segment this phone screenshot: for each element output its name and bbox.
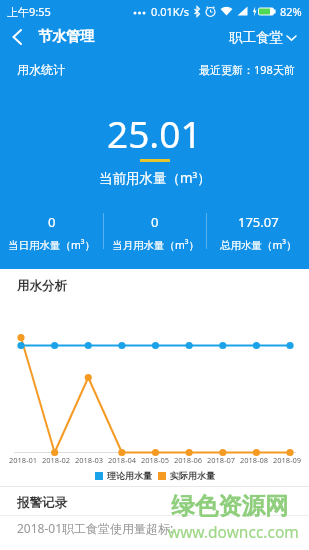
staticText: 报警记录 <box>17 495 67 511</box>
staticText: 0.01K/s <box>151 4 189 19</box>
staticText: 上午9:55 <box>7 4 51 19</box>
staticText: 2018-06 <box>174 455 203 465</box>
staticText: 当月用水量（m³） <box>112 238 199 252</box>
staticText: 2018-09 <box>273 455 302 465</box>
button[interactable] <box>0 22 34 52</box>
staticText: 节水管理 <box>38 28 94 46</box>
staticText: 82% <box>280 4 302 19</box>
staticText: 2018-01 <box>9 455 38 465</box>
staticText: 175.07 <box>238 213 279 231</box>
button[interactable]: 实际用水量 <box>158 470 215 481</box>
button[interactable]: 2018-01职工食堂使用量超标: <box>17 520 174 536</box>
staticText: 0 <box>48 213 56 231</box>
staticText: 理论用水量 <box>107 470 152 481</box>
button[interactable]: 0 <box>104 213 206 252</box>
staticText: 用水统计 <box>17 62 65 77</box>
staticText: 当前用水量（m³） <box>99 169 211 187</box>
staticText: 2018-02 <box>42 455 71 465</box>
staticText: 2018-05 <box>141 455 170 465</box>
staticText: 最近更新：198天前 <box>199 62 295 77</box>
staticText: 2018-08 <box>240 455 269 465</box>
staticText: www.downcc.com <box>168 521 299 542</box>
staticText: 总用水量（m³） <box>220 238 297 252</box>
staticText: 用水分析 <box>17 278 67 294</box>
staticText: 25.01 <box>107 108 202 158</box>
staticText: 实际用水量 <box>170 470 215 481</box>
staticText: 职工食堂 <box>229 29 283 46</box>
staticText: 2018-07 <box>207 455 236 465</box>
staticText: 0 <box>151 213 159 231</box>
staticText: 2018-04 <box>108 455 137 465</box>
button[interactable]: 职工食堂 <box>229 29 309 46</box>
button[interactable]: 0 <box>0 213 103 252</box>
button[interactable]: 理论用水量 <box>95 470 152 481</box>
staticText: 绿色资源网 <box>171 491 289 521</box>
button[interactable]: 175.07 <box>207 213 309 252</box>
staticText: 当日用水量（m³） <box>8 238 95 252</box>
staticText: 2018-03 <box>75 455 104 465</box>
